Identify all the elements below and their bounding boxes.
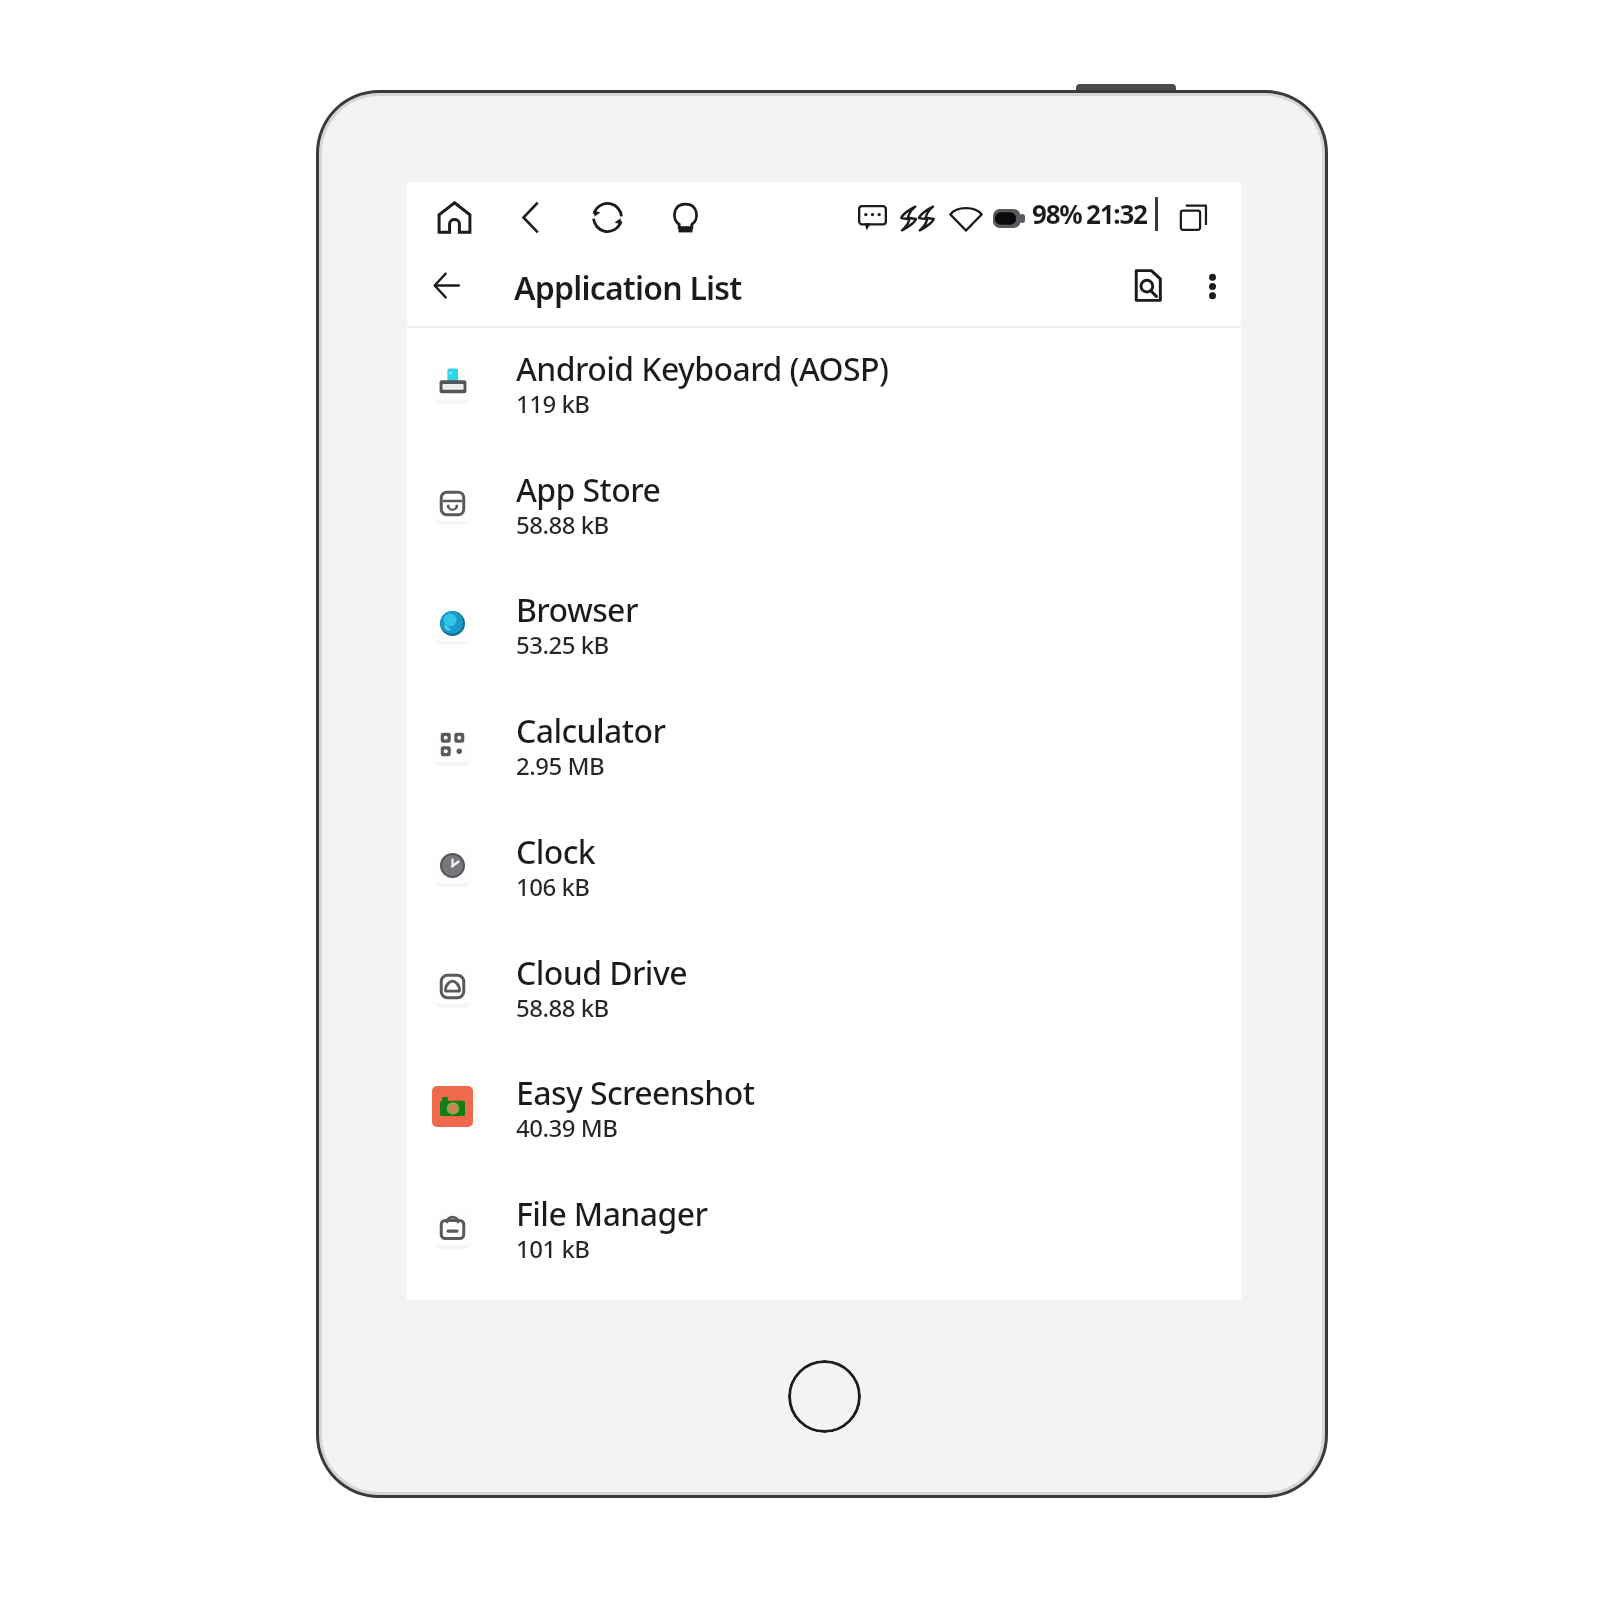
staticText: 58.88 kB bbox=[516, 991, 609, 1024]
button[interactable]: File Manager bbox=[407, 1173, 1241, 1293]
staticText: Clock bbox=[516, 830, 596, 874]
button[interactable]: Search documents bbox=[1122, 259, 1174, 311]
staticText: App Store bbox=[516, 468, 661, 512]
staticText: File Manager bbox=[516, 1192, 708, 1236]
staticText: 98% bbox=[1032, 196, 1082, 231]
staticText: Cloud Drive bbox=[516, 951, 687, 995]
button[interactable]: Android Keyboard (AOSP) bbox=[407, 328, 1241, 448]
button[interactable]: Home bbox=[788, 1360, 861, 1433]
button[interactable]: App Store bbox=[407, 449, 1241, 569]
button[interactable]: Refresh bbox=[583, 193, 631, 241]
button[interactable]: Back bbox=[418, 257, 474, 313]
staticText: 106 kB bbox=[516, 870, 590, 903]
button[interactable]: More options bbox=[1186, 260, 1238, 312]
staticText: 101 kB bbox=[516, 1232, 590, 1265]
button[interactable]: Brightness bbox=[661, 193, 709, 241]
staticText: Easy Screenshot bbox=[516, 1071, 755, 1115]
button[interactable]: Easy Screenshot bbox=[407, 1052, 1241, 1172]
button[interactable]: Back bbox=[506, 193, 554, 241]
staticText: 40.39 MB bbox=[516, 1111, 618, 1144]
staticText: Android Keyboard (AOSP) bbox=[516, 347, 889, 391]
button[interactable]: Calculator bbox=[407, 690, 1241, 810]
staticText: 119 kB bbox=[516, 387, 590, 420]
staticText: 58.88 kB bbox=[516, 508, 609, 541]
button[interactable]: Browser bbox=[407, 569, 1241, 689]
button[interactable]: Recent apps bbox=[1171, 194, 1218, 241]
button[interactable]: Home bbox=[430, 193, 478, 241]
staticText: 53.25 kB bbox=[516, 628, 609, 661]
staticText: Application List bbox=[514, 266, 742, 310]
staticText: 2.95 MB bbox=[516, 749, 605, 782]
staticText: 21:32 bbox=[1086, 196, 1147, 231]
button[interactable]: Cloud Drive bbox=[407, 932, 1241, 1052]
staticText: Calculator bbox=[516, 709, 666, 753]
staticText: Browser bbox=[516, 588, 638, 632]
button[interactable]: Clock bbox=[407, 811, 1241, 931]
